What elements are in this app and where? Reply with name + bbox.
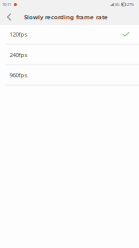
staticText: 240fps <box>9 51 27 59</box>
staticText: 27% <box>127 2 134 7</box>
staticText: Slowly recording frame rate <box>24 13 108 21</box>
staticText: 120fps <box>9 30 27 38</box>
button[interactable]: Back <box>2 9 15 25</box>
staticText: 3G <box>114 2 119 7</box>
staticText: 10:11 <box>2 2 11 7</box>
button[interactable]: 960fps <box>0 66 139 84</box>
button[interactable]: 240fps <box>0 45 139 64</box>
staticText: 960fps <box>9 71 27 79</box>
button[interactable]: 120fps <box>0 25 139 43</box>
